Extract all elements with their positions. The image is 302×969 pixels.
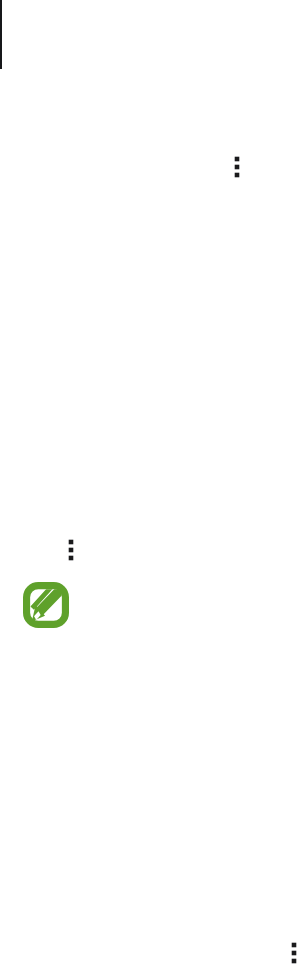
button[interactable]: More options xyxy=(227,149,247,185)
button[interactable]: More options xyxy=(61,532,81,568)
button[interactable]: S Note xyxy=(23,582,69,628)
button[interactable]: More options xyxy=(284,935,302,969)
